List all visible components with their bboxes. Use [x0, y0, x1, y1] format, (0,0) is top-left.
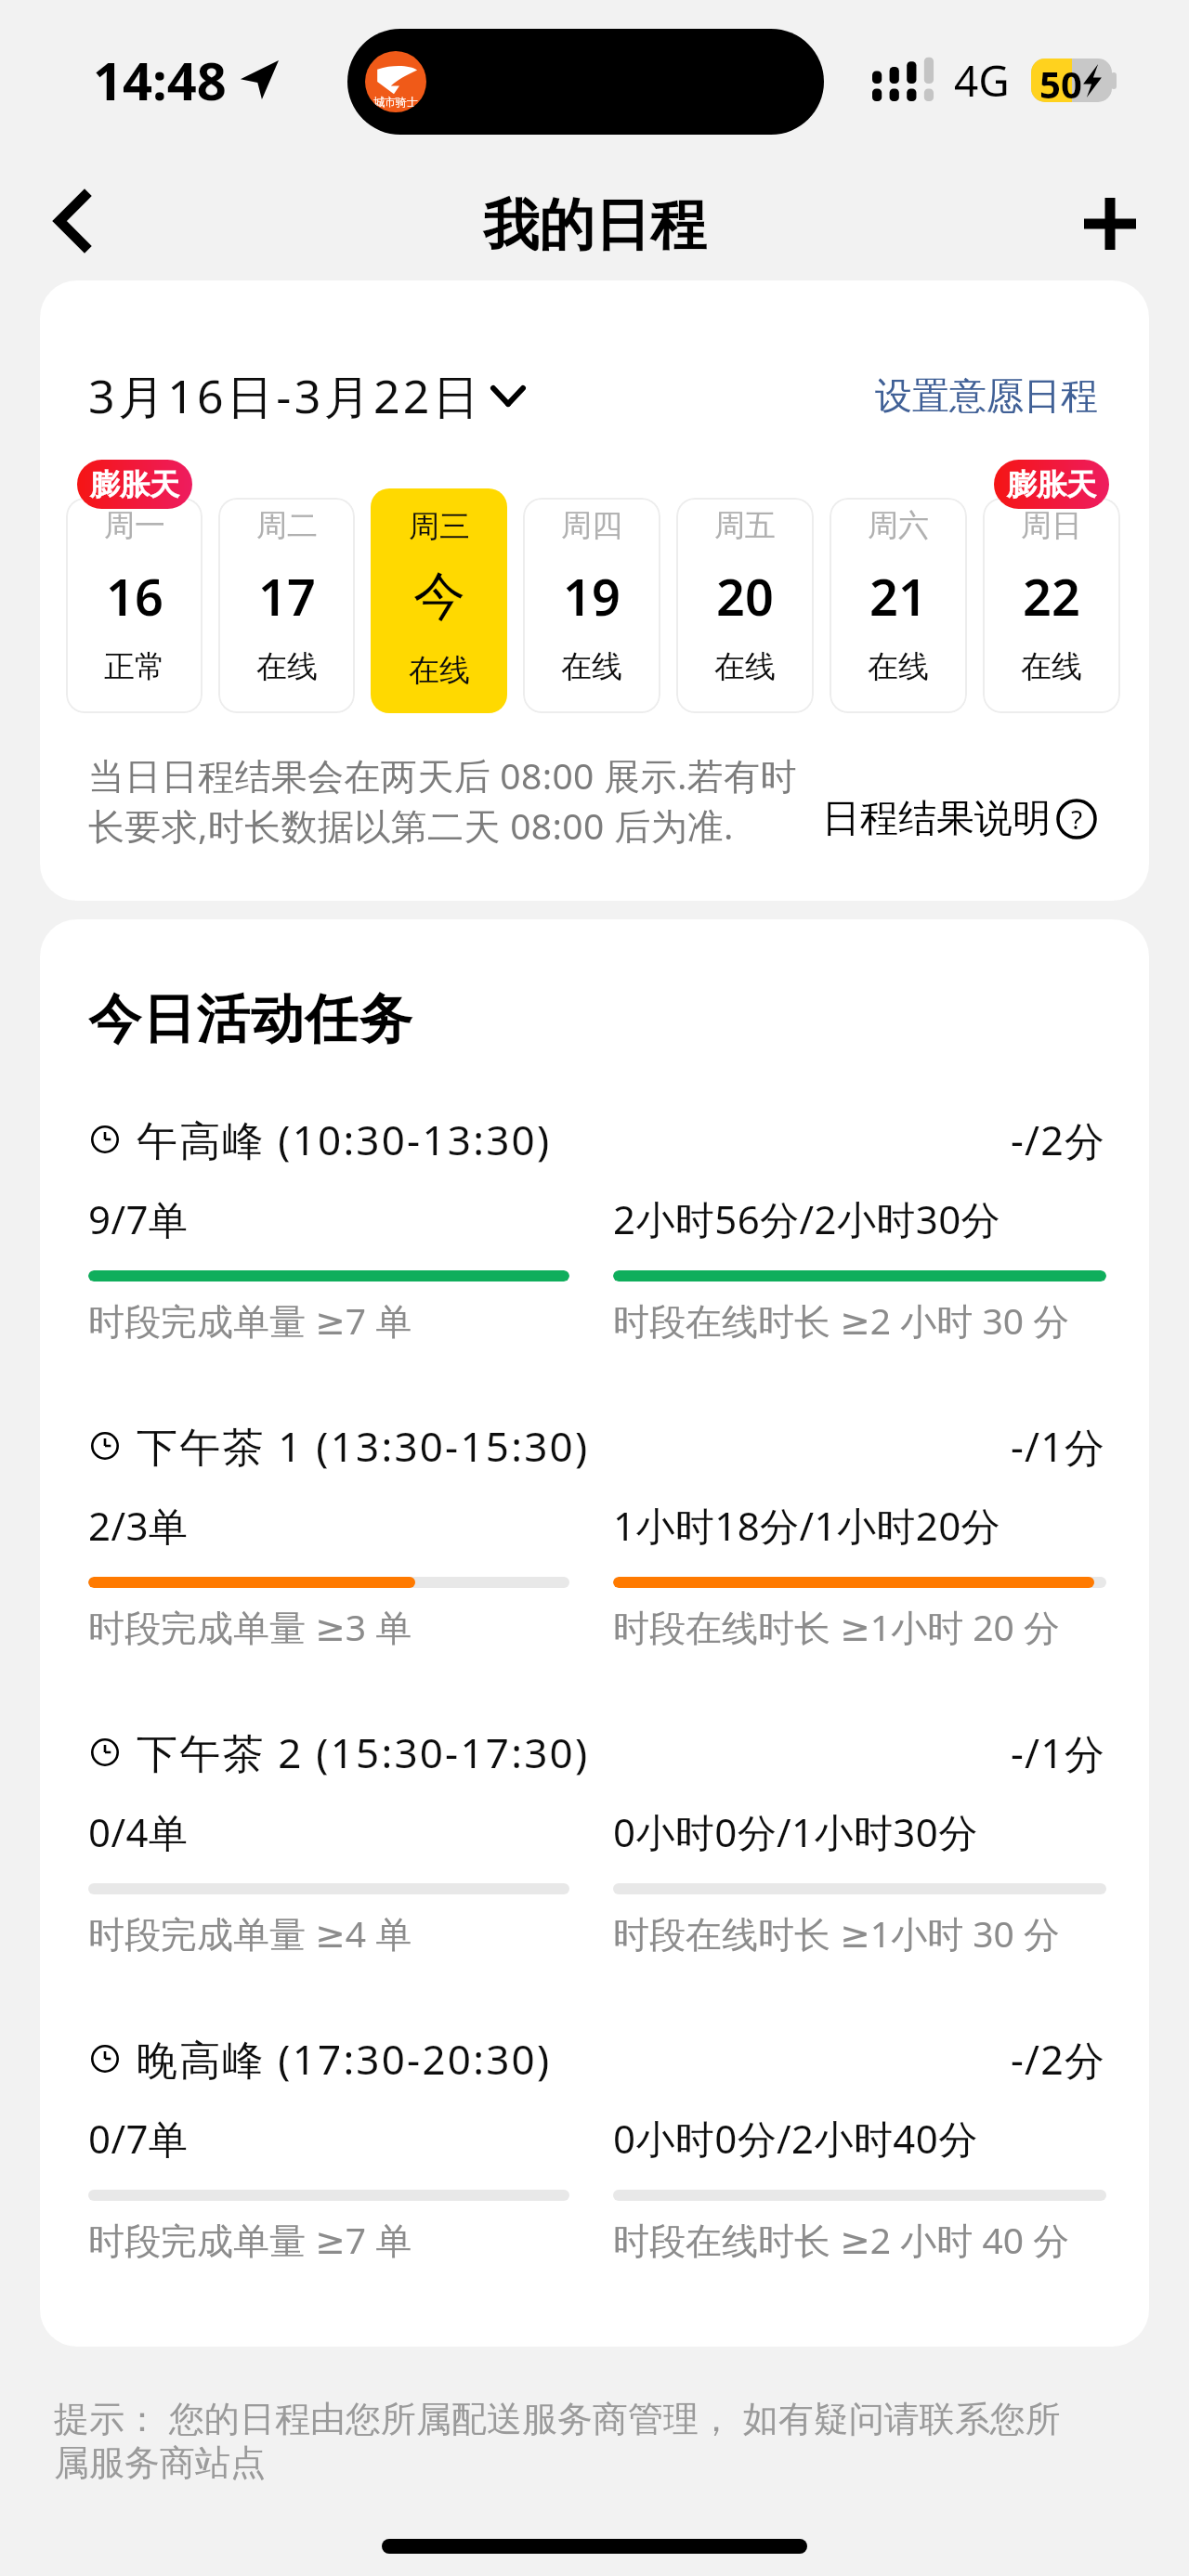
staticText: 下午茶 2 (15:30-17:30)	[137, 1724, 590, 1780]
staticText: 2小时56分/2小时30分	[613, 1192, 1000, 1245]
staticText: 21	[869, 562, 927, 631]
staticText: 周一	[104, 506, 165, 545]
staticText: 提示： 您的日程由您所属配送服务商管理， 如有疑问请联系您所 属服务商站点	[54, 2393, 1061, 2485]
staticText: 17	[258, 562, 316, 631]
button[interactable]: 周四	[523, 498, 660, 713]
button[interactable]: Back	[20, 170, 123, 272]
staticText: 周五	[714, 506, 776, 545]
staticText: 20	[716, 562, 774, 631]
staticText: 时段完成单量 ≥3 单	[88, 1602, 412, 1651]
staticText: 今日活动任务	[88, 986, 413, 1053]
staticText: 午高峰 (10:30-13:30)	[137, 1112, 552, 1167]
staticText: 时段在线时长 ≥2 小时 30 分	[613, 1295, 1070, 1345]
staticText: -/2分	[1011, 1112, 1106, 1167]
staticText: 4G	[954, 51, 1010, 110]
staticText: 周六	[868, 506, 929, 545]
staticText: -/1分	[1011, 1419, 1106, 1474]
button[interactable]: 设置意愿日程	[875, 372, 1098, 419]
staticText: 时段在线时长 ≥1小时 30 分	[613, 1908, 1061, 1958]
staticText: ?	[1071, 801, 1083, 837]
staticText: 时段完成单量 ≥7 单	[88, 2215, 412, 2264]
button[interactable]: 周六	[830, 498, 967, 713]
staticText: 今	[413, 564, 465, 630]
staticText: 在线	[868, 647, 929, 686]
staticText: 城市骑士	[373, 95, 418, 109]
staticText: 3月16日-3月22日	[88, 364, 482, 427]
staticText: 16	[106, 562, 163, 631]
staticText: 下午茶 1 (13:30-15:30)	[137, 1418, 590, 1474]
staticText: 日程结果说明	[822, 795, 1051, 843]
button[interactable]: 日程结果说明	[822, 795, 1097, 850]
staticText: 时段在线时长 ≥2 小时 40 分	[613, 2215, 1070, 2264]
staticText: 22	[1023, 562, 1080, 631]
staticText: 0小时0分/2小时40分	[613, 2112, 978, 2165]
button[interactable]: 周三	[371, 488, 507, 713]
staticText: 在线	[256, 647, 318, 686]
button[interactable]: 周日	[983, 498, 1120, 713]
button[interactable]: 周一	[66, 498, 203, 713]
staticText: 在线	[561, 647, 622, 686]
staticText: 晚高峰 (17:30-20:30)	[137, 2031, 552, 2087]
button[interactable]: 周二	[218, 498, 355, 713]
staticText: 9/7单	[88, 1192, 189, 1245]
staticText: -/1分	[1011, 1725, 1106, 1780]
staticText: 当日日程结果会在两天后 08:00 展示.若有时 长要求,时长数据以第二天 08…	[88, 750, 804, 850]
staticText: 0/4单	[88, 1805, 189, 1858]
staticText: 时段完成单量 ≥4 单	[88, 1908, 412, 1958]
staticText: 0小时0分/1小时30分	[613, 1805, 978, 1858]
staticText: 时段在线时长 ≥1小时 20 分	[613, 1602, 1061, 1651]
staticText: 14:48	[93, 45, 227, 115]
staticText: 周日	[1021, 506, 1082, 545]
staticText: 1小时18分/1小时20分	[613, 1499, 1000, 1552]
staticText: 2/3单	[88, 1499, 189, 1552]
staticText: 19	[563, 562, 621, 631]
button[interactable]: 周五	[676, 498, 814, 713]
button[interactable]: Add	[1059, 173, 1161, 275]
staticText: 周二	[256, 506, 318, 545]
staticText: 周三	[409, 507, 470, 546]
staticText: -/2分	[1011, 2032, 1106, 2087]
staticText: 在线	[714, 647, 776, 686]
staticText: 50	[1039, 59, 1082, 102]
staticText: 时段完成单量 ≥7 单	[88, 1295, 412, 1345]
staticText: 周四	[561, 506, 622, 545]
staticText: 0/7单	[88, 2112, 189, 2165]
staticText: 在线	[409, 651, 470, 690]
staticText: 膨胀天	[90, 466, 179, 503]
staticText: 在线	[1021, 647, 1082, 686]
button[interactable]: 3月16日-3月22日	[88, 364, 525, 427]
staticText: 正常	[104, 647, 165, 686]
staticText: 膨胀天	[1007, 466, 1096, 503]
staticText: 我的日程	[483, 190, 706, 261]
